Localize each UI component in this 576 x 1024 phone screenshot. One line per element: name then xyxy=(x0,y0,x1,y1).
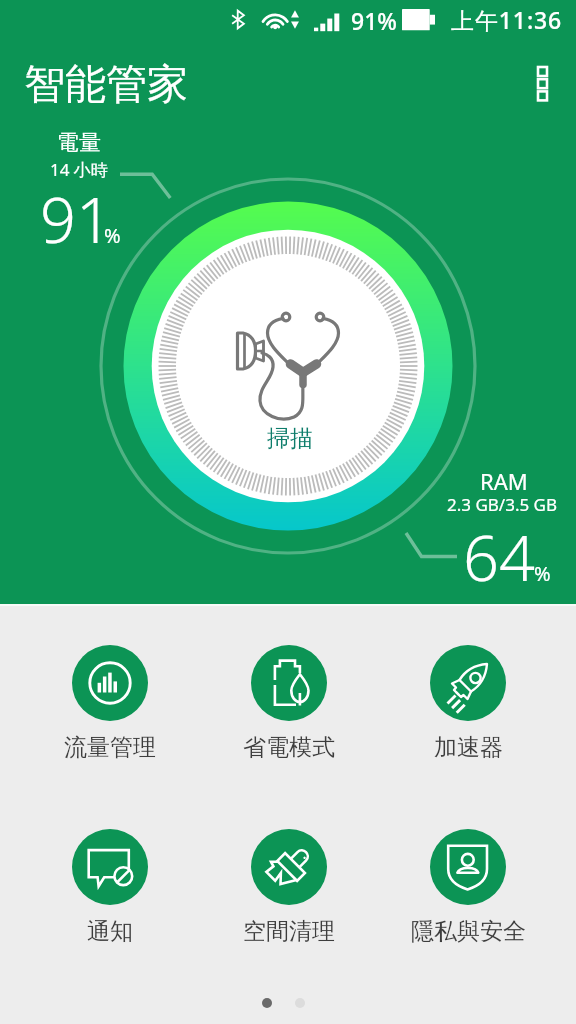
button[interactable]: 流量管理 xyxy=(30,645,190,762)
staticText: 電量 xyxy=(57,129,101,157)
staticText: 2.3 GB/3.5 GB xyxy=(447,493,558,516)
staticText: 隱私與安全 xyxy=(411,917,526,946)
staticText: 91 xyxy=(40,176,112,262)
staticText: 空間清理 xyxy=(243,917,335,946)
other: Page 2 xyxy=(295,998,305,1008)
button[interactable]: 加速器 xyxy=(388,645,548,762)
staticText: 掃描 xyxy=(267,424,313,453)
staticText: 流量管理 xyxy=(64,733,156,762)
staticText: 64 xyxy=(463,514,535,600)
staticText: % xyxy=(104,222,121,249)
staticText: 91% xyxy=(351,5,397,36)
staticText: 加速器 xyxy=(434,733,503,762)
button[interactable]: 空間清理 xyxy=(209,829,369,946)
staticText: % xyxy=(534,560,551,587)
staticText: 上午11:36 xyxy=(451,4,563,35)
staticText: 通知 xyxy=(87,917,133,946)
button[interactable]: More options xyxy=(518,59,566,107)
staticText: 14 小時 xyxy=(50,158,108,181)
other: Page 1 xyxy=(262,998,272,1008)
button[interactable]: 掃描 xyxy=(176,254,400,478)
staticText: 省電模式 xyxy=(243,733,335,762)
staticText: RAM xyxy=(480,466,528,496)
staticText: 智能管家 xyxy=(24,59,188,111)
button[interactable]: 隱私與安全 xyxy=(388,829,548,946)
button[interactable]: 通知 xyxy=(30,829,190,946)
button[interactable]: 省電模式 xyxy=(209,645,369,762)
